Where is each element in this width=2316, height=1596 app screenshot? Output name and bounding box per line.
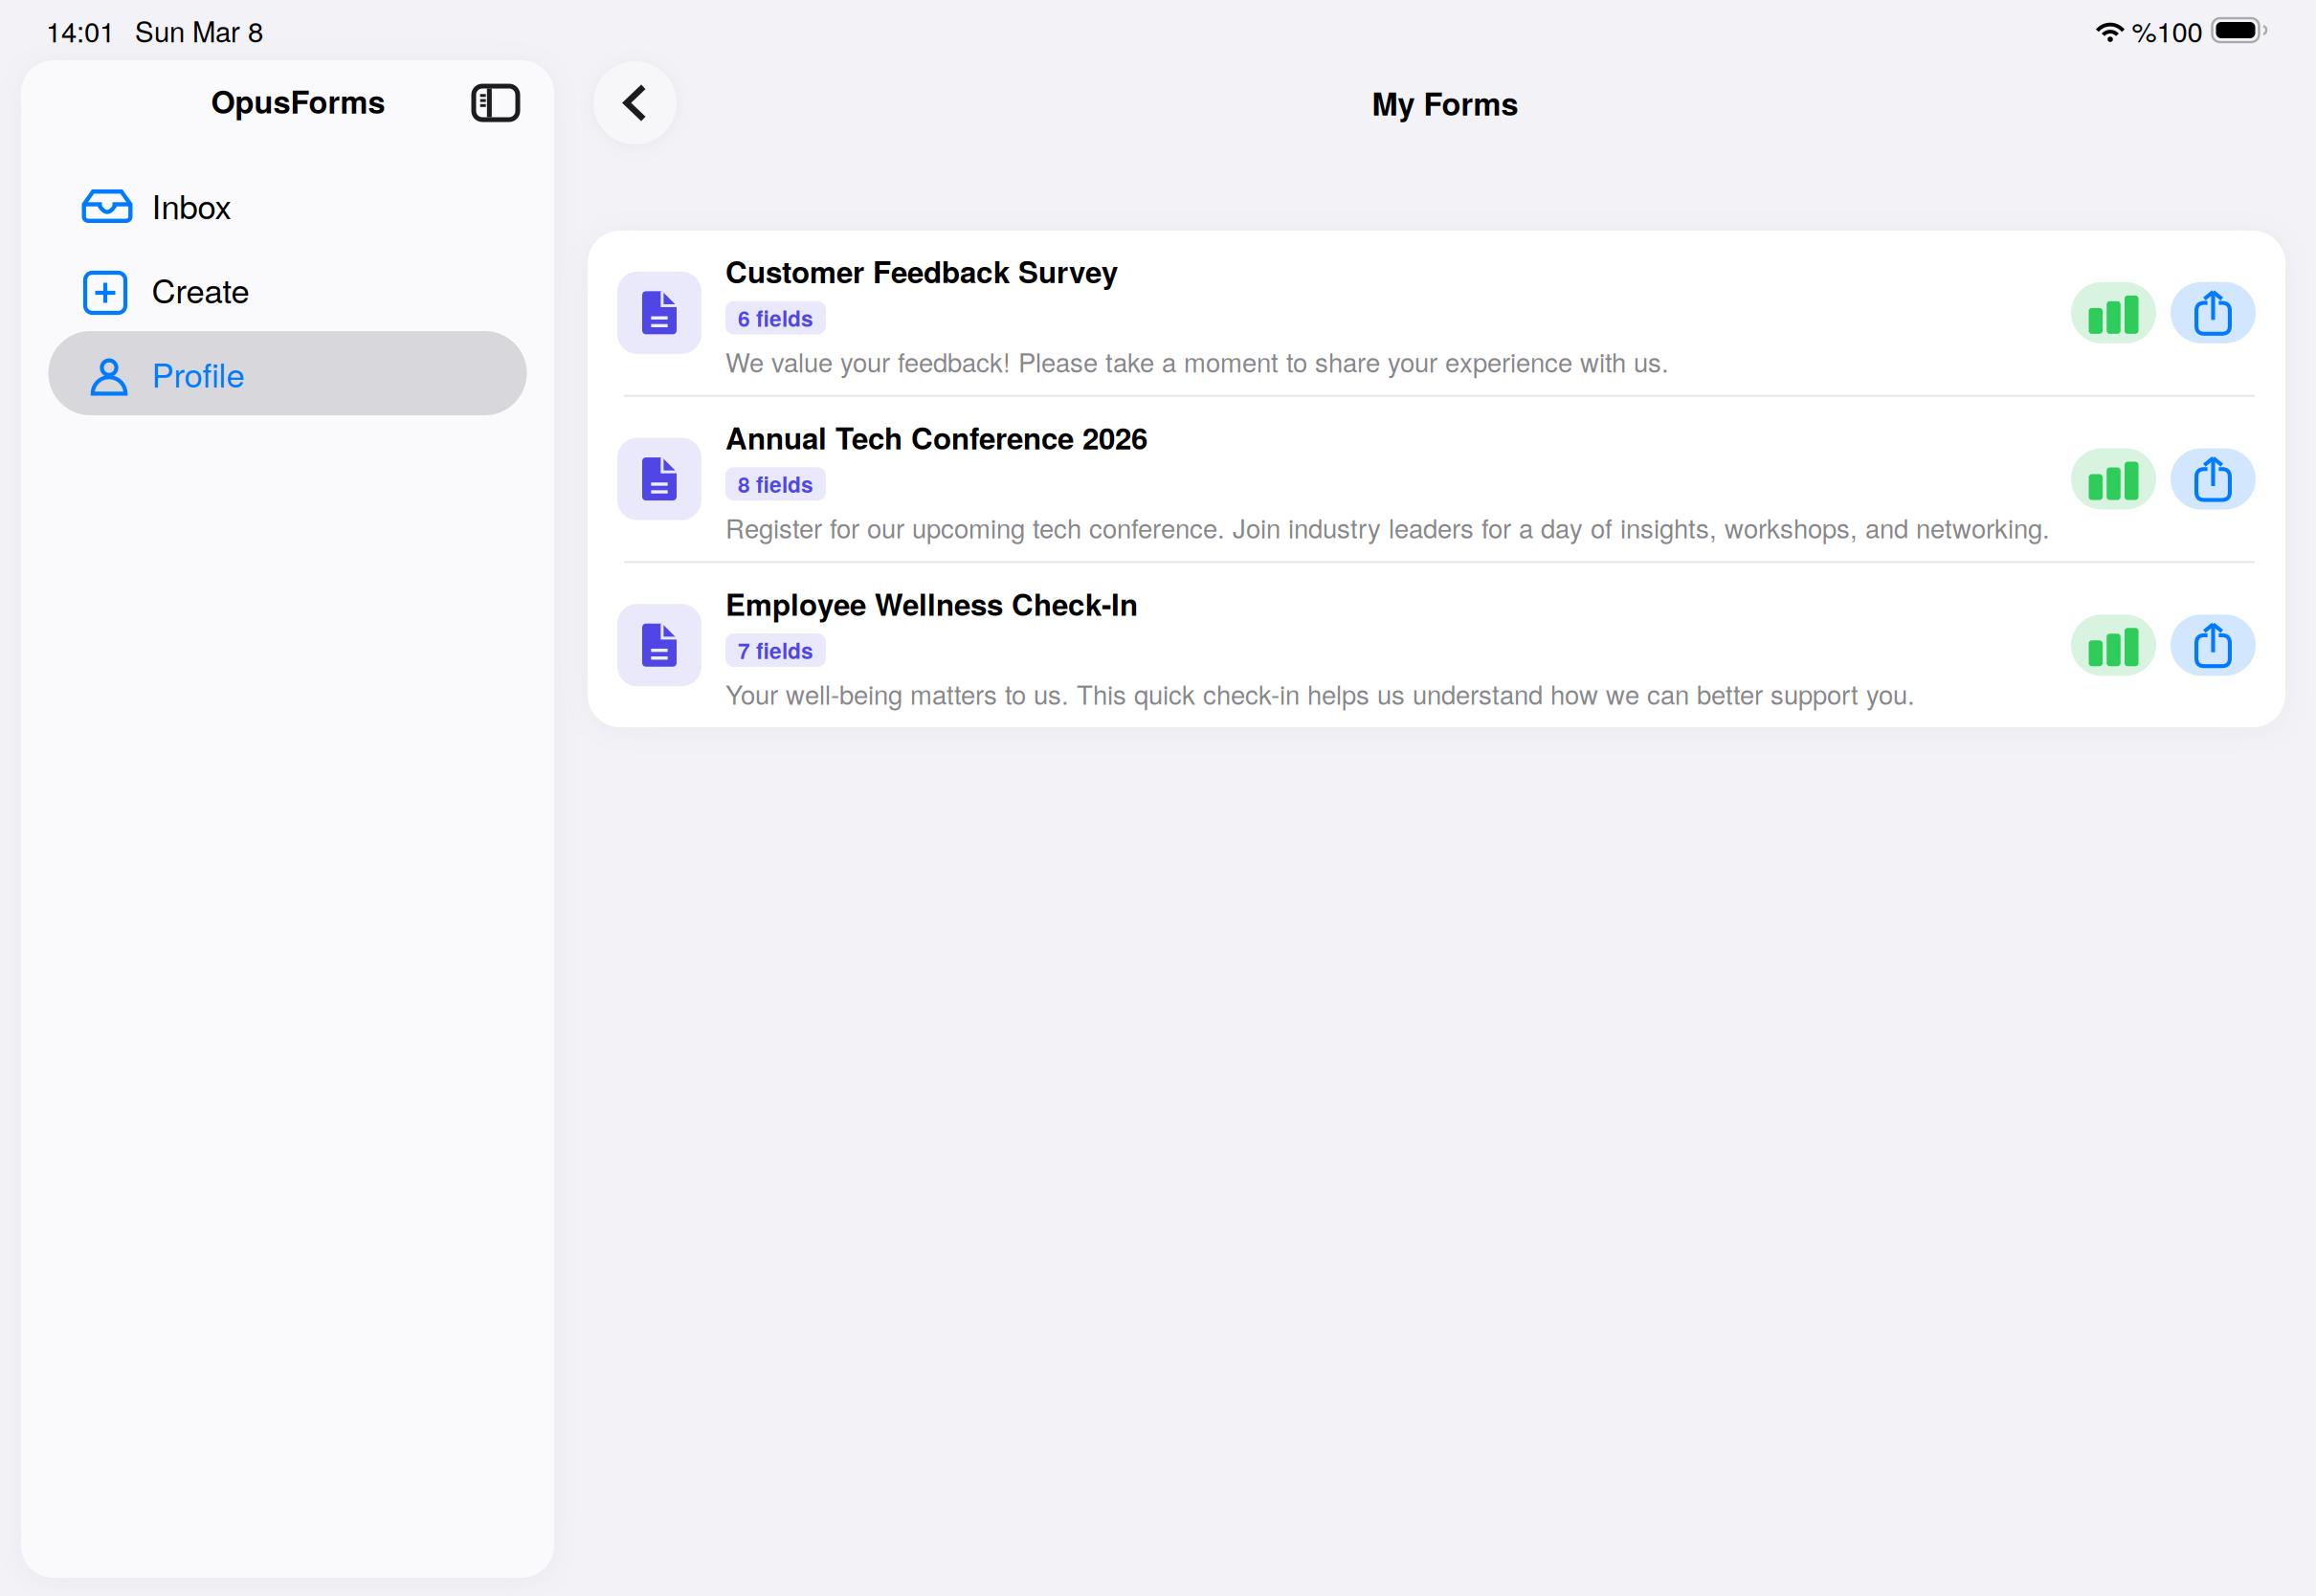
button[interactable]: Profile [48, 331, 527, 415]
staticText: 6 fields [738, 302, 813, 333]
button[interactable]: Inbox [48, 163, 527, 247]
staticText: 7 fields [738, 635, 813, 666]
staticText: Inbox [152, 181, 231, 228]
staticText: 14:01 [46, 10, 115, 50]
button[interactable]: Back [593, 61, 677, 144]
staticText: Create [152, 265, 249, 313]
staticText: We value your feedback! Please take a mo… [725, 342, 1669, 380]
staticText: %100 [2132, 10, 2203, 50]
button[interactable]: Employee Wellness Check-In [588, 563, 2066, 727]
staticText: Your well-being matters to us. This quic… [725, 675, 1915, 712]
staticText: OpusForms [211, 79, 385, 123]
button[interactable]: View results [2071, 448, 2156, 510]
staticText: Annual Tech Conference 2026 [725, 416, 1147, 459]
button[interactable]: Annual Tech Conference 2026 [588, 397, 2066, 561]
button[interactable]: Customer Feedback Survey [588, 231, 2066, 395]
staticText: Profile [152, 349, 245, 397]
staticText: Register for our upcoming tech conferenc… [725, 508, 2050, 546]
staticText: My Forms [1372, 81, 1518, 125]
staticText: Employee Wellness Check-In [725, 582, 1138, 625]
button[interactable]: View results [2071, 614, 2156, 676]
button[interactable]: Share [2171, 282, 2256, 343]
button[interactable]: Share [2171, 448, 2256, 510]
staticText: 8 fields [738, 468, 813, 500]
staticText: Customer Feedback Survey [725, 249, 1118, 292]
button[interactable]: Create [48, 247, 527, 331]
button[interactable]: View results [2071, 282, 2156, 343]
staticText: Sun Mar 8 [135, 10, 263, 50]
button[interactable]: Share [2171, 614, 2256, 676]
button[interactable]: Toggle Sidebar [466, 78, 533, 145]
